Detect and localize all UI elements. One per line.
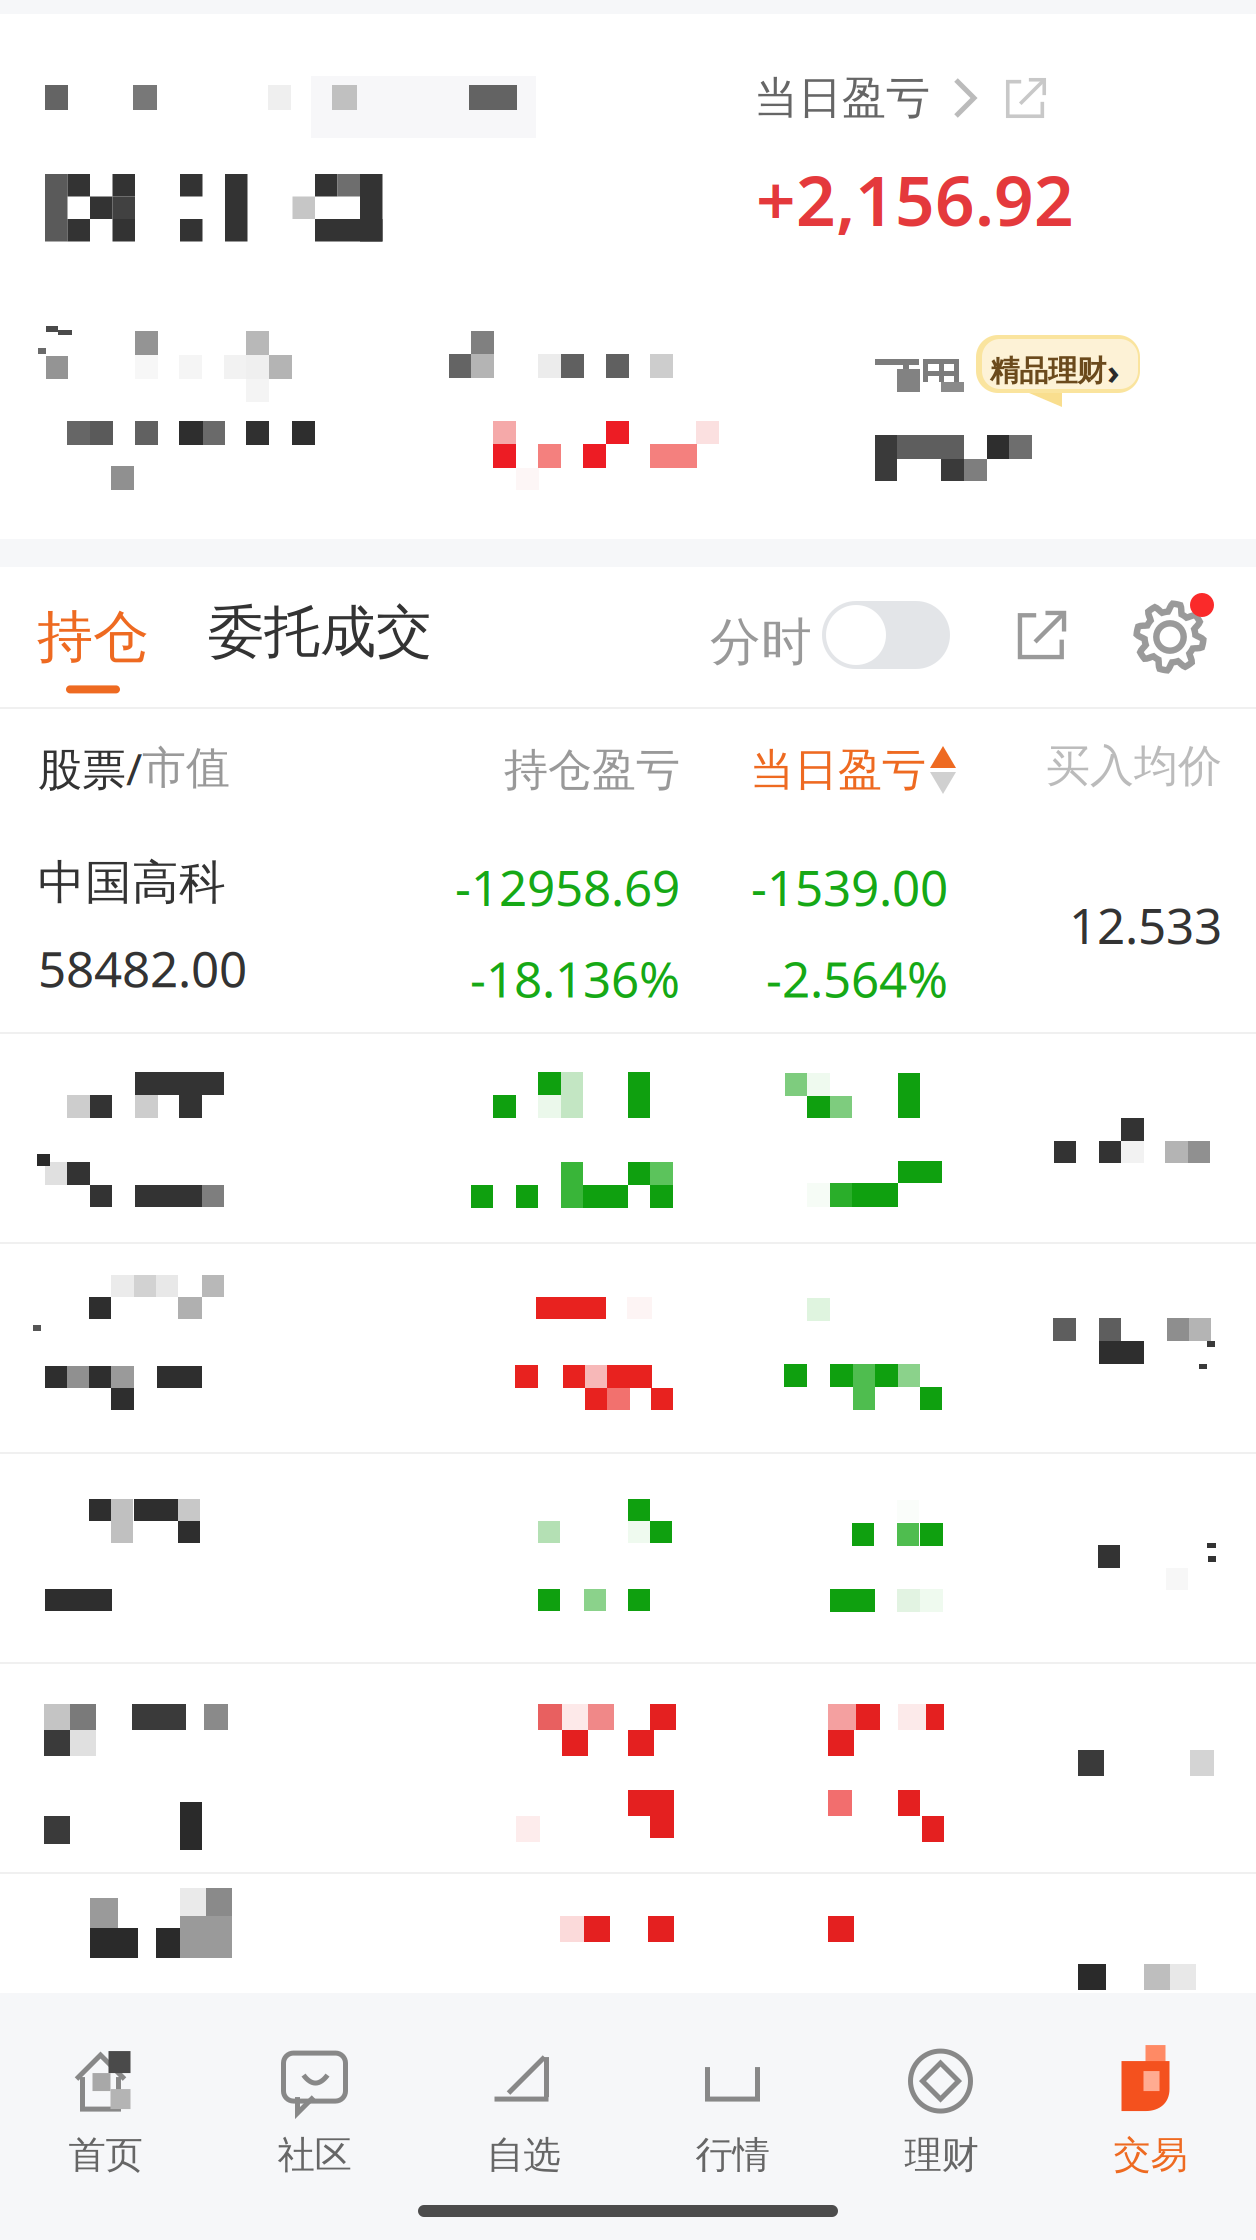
- button[interactable]: Settings: [1124, 591, 1216, 683]
- staticText: 58482.00: [38, 935, 247, 1001]
- button[interactable]: 持仓盈亏: [480, 739, 680, 801]
- staticText: 分时: [710, 611, 812, 673]
- staticText: 市值: [142, 741, 230, 795]
- staticText: -12958.69: [455, 854, 680, 919]
- staticText: +2,156.92: [756, 153, 1074, 245]
- staticText: 当日盈亏: [754, 71, 930, 125]
- staticText: 精品理财: [990, 353, 1106, 389]
- staticText: 12.533: [1069, 892, 1222, 957]
- staticText: 行情: [695, 2132, 769, 2178]
- staticText: 委托成交: [208, 598, 432, 666]
- button[interactable]: 分时: [822, 601, 950, 669]
- staticText: 中国高科: [38, 854, 226, 911]
- button[interactable]: [0, 1874, 1256, 2082]
- button[interactable]: [0, 1454, 1256, 1662]
- staticText: 首页: [68, 2132, 142, 2178]
- staticText: ›: [1107, 348, 1120, 394]
- staticText: 股票/: [38, 739, 142, 797]
- button[interactable]: 当日盈亏: [754, 70, 1050, 126]
- button[interactable]: 自选: [419, 2023, 628, 2203]
- staticText: 社区: [277, 2132, 351, 2178]
- staticText: 持仓: [37, 603, 149, 671]
- button[interactable]: [0, 1664, 1256, 1872]
- button[interactable]: 首页: [1, 2023, 210, 2203]
- button[interactable]: 委托成交: [200, 595, 440, 669]
- staticText: -1539.00: [751, 854, 948, 919]
- button[interactable]: 社区: [210, 2023, 419, 2203]
- button[interactable]: [0, 1034, 1256, 1242]
- button[interactable]: 中国高科: [0, 812, 1256, 1032]
- staticText: 交易: [1113, 2132, 1187, 2178]
- button[interactable]: 当日盈亏: [750, 739, 956, 801]
- staticText: 当日盈亏: [750, 743, 926, 797]
- staticText: 买入均价: [1046, 739, 1222, 793]
- button[interactable]: 行情: [628, 2023, 837, 2203]
- button[interactable]: [0, 1244, 1256, 1452]
- staticText: -2.564%: [766, 945, 948, 1011]
- button[interactable]: Share: [1000, 593, 1084, 677]
- button[interactable]: 精品理财: [976, 335, 1156, 435]
- staticText: 理财: [904, 2132, 978, 2178]
- button[interactable]: 持仓: [28, 593, 158, 703]
- staticText: -18.136%: [470, 945, 680, 1011]
- button[interactable]: 理财: [837, 2023, 1046, 2203]
- button[interactable]: 交易: [1046, 2023, 1255, 2203]
- staticText: 持仓盈亏: [504, 743, 680, 797]
- staticText: 自选: [486, 2132, 560, 2178]
